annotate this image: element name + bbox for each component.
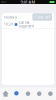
staticText: 10:24: [4, 23, 13, 26]
staticText: Call like suggested: [19, 21, 34, 28]
button[interactable]: More: [45, 87, 56, 100]
button[interactable]: Clear All: [32, 13, 52, 21]
button[interactable]: Favourites: [22, 87, 34, 100]
staticText: Clear All: [34, 14, 50, 20]
button[interactable]: Apps: [34, 87, 45, 100]
button[interactable]: Search: [11, 87, 22, 100]
button[interactable]: Home: [0, 87, 11, 100]
staticText: 9:41 AM: [20, 0, 35, 5]
staticText: History: [4, 14, 17, 20]
button[interactable]: 10:24: [2, 21, 54, 28]
